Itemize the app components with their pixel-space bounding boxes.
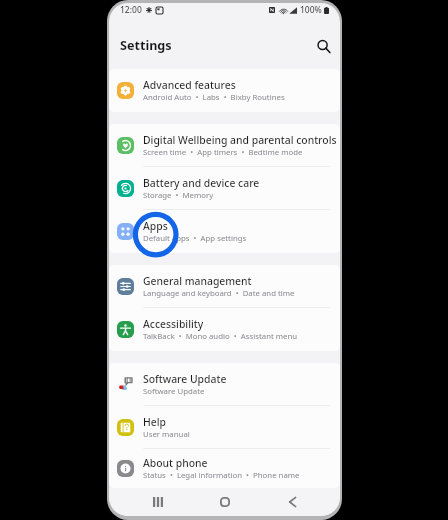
- staticText: Accessibility: [143, 317, 204, 331]
- button[interactable]: Apps: [109, 210, 340, 253]
- staticText: Software Update: [143, 372, 227, 386]
- staticText: Apps: [143, 219, 168, 233]
- staticText: Android Auto • Labs • Bixby Routines: [143, 92, 285, 103]
- staticText: Software Update: [143, 386, 205, 397]
- staticText: TalkBack • Mono audio • Assistant menu: [143, 331, 298, 342]
- button[interactable]: Help: [109, 406, 340, 449]
- staticText: Battery and device care: [143, 176, 260, 190]
- staticText: Digital Wellbeing and parental controls: [143, 133, 337, 147]
- staticText: Advanced features: [143, 78, 236, 92]
- button[interactable]: Software Update: [109, 363, 340, 406]
- button[interactable]: About phone: [109, 449, 340, 488]
- button[interactable]: Digital Wellbeing and parental controls: [109, 124, 340, 167]
- button[interactable]: Accessibility: [109, 308, 340, 351]
- staticText: Storage • Memory: [143, 190, 214, 201]
- staticText: Screen time • App timers • Bedtime mode: [143, 147, 303, 158]
- staticText: Settings: [120, 37, 172, 54]
- staticText: Default apps • App settings: [143, 233, 247, 244]
- button[interactable]: Home: [213, 491, 237, 513]
- button[interactable]: Search: [313, 36, 335, 58]
- button[interactable]: Back: [280, 491, 304, 513]
- button[interactable]: General management: [109, 265, 340, 308]
- staticText: Status • Legal information • Phone name: [143, 470, 300, 481]
- staticText: About phone: [143, 456, 208, 470]
- button[interactable]: Recent apps: [146, 491, 170, 513]
- staticText: 12:00: [120, 4, 142, 16]
- staticText: User manual: [143, 429, 190, 440]
- staticText: 100%: [300, 4, 322, 16]
- button[interactable]: Battery and device care: [109, 167, 340, 210]
- staticText: General management: [143, 274, 252, 288]
- button[interactable]: Advanced features: [109, 69, 340, 112]
- staticText: Help: [143, 415, 166, 429]
- staticText: Language and keyboard • Date and time: [143, 288, 295, 299]
